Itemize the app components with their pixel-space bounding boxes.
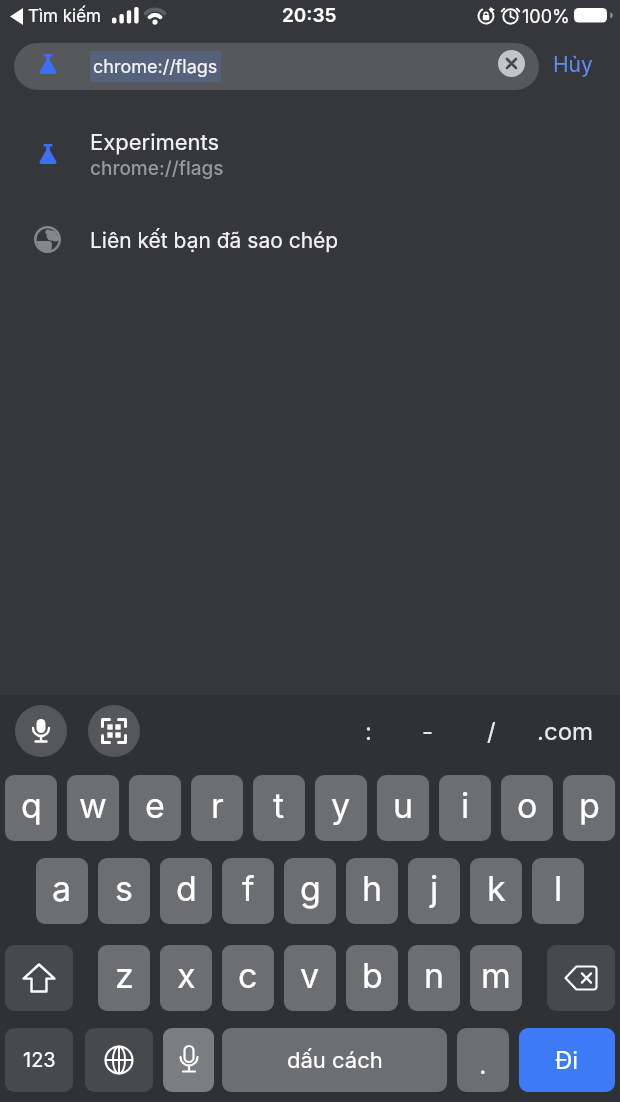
- button[interactable]: j: [408, 858, 460, 924]
- button[interactable]: s: [98, 858, 150, 924]
- button[interactable]: m: [470, 945, 522, 1011]
- staticText: o: [517, 785, 538, 826]
- button[interactable]: a: [36, 858, 88, 924]
- button[interactable]: Experiments: [0, 118, 620, 192]
- staticText: y: [331, 785, 351, 826]
- staticText: a: [52, 868, 72, 909]
- button[interactable]: u: [377, 775, 429, 841]
- staticText: j: [430, 868, 439, 909]
- staticText: m: [481, 955, 511, 996]
- staticText: x: [177, 955, 196, 996]
- button[interactable]: [498, 50, 525, 77]
- staticText: s: [115, 868, 133, 909]
- staticText: Hủy: [553, 52, 593, 77]
- button[interactable]: i: [439, 775, 491, 841]
- staticText: 20:35: [282, 4, 337, 27]
- button[interactable]: h: [346, 858, 398, 924]
- staticText: u: [393, 785, 414, 826]
- button[interactable]: b: [346, 945, 398, 1011]
- staticText: q: [21, 785, 42, 826]
- button[interactable]: Đi: [519, 1028, 615, 1092]
- staticText: p: [579, 785, 600, 826]
- button[interactable]: c: [222, 945, 274, 1011]
- button[interactable]: dấu cách: [222, 1028, 447, 1092]
- staticText: Experiments: [90, 129, 220, 156]
- button[interactable]: :: [352, 705, 384, 757]
- button[interactable]: g: [284, 858, 336, 924]
- button[interactable]: /: [475, 705, 507, 757]
- staticText: chrome://flags: [93, 56, 218, 78]
- button[interactable]: v: [284, 945, 336, 1011]
- staticText: dấu cách: [287, 1047, 383, 1074]
- button[interactable]: Hủy: [546, 48, 600, 80]
- staticText: chrome://flags: [90, 157, 224, 180]
- staticText: i: [461, 785, 470, 826]
- staticText: /: [487, 717, 496, 746]
- staticText: Liên kết bạn đã sao chép: [90, 228, 339, 253]
- staticText: .com: [537, 717, 594, 746]
- button[interactable]: [88, 705, 140, 757]
- button[interactable]: o: [501, 775, 553, 841]
- staticText: n: [424, 955, 445, 996]
- button[interactable]: .: [457, 1028, 509, 1092]
- button[interactable]: -: [412, 705, 444, 757]
- button[interactable]: r: [191, 775, 243, 841]
- button[interactable]: k: [470, 858, 522, 924]
- button[interactable]: p: [563, 775, 615, 841]
- button[interactable]: w: [67, 775, 119, 841]
- button[interactable]: [85, 1028, 153, 1092]
- staticText: d: [176, 868, 197, 909]
- button[interactable]: t: [253, 775, 305, 841]
- button[interactable]: .com: [528, 705, 602, 757]
- staticText: l: [554, 868, 563, 909]
- staticText: 100%: [522, 6, 570, 28]
- staticText: -: [422, 717, 434, 746]
- staticText: z: [115, 955, 134, 996]
- staticText: c: [238, 955, 258, 996]
- staticText: g: [300, 868, 321, 909]
- button[interactable]: n: [408, 945, 460, 1011]
- staticText: h: [362, 868, 383, 909]
- button[interactable]: [163, 1028, 214, 1092]
- button[interactable]: [547, 945, 615, 1011]
- staticText: t: [273, 785, 285, 826]
- button[interactable]: [5, 945, 73, 1011]
- staticText: f: [242, 868, 255, 909]
- button[interactable]: z: [98, 945, 150, 1011]
- staticText: b: [362, 955, 383, 996]
- button[interactable]: q: [5, 775, 57, 841]
- button[interactable]: l: [532, 858, 584, 924]
- button[interactable]: 123: [5, 1028, 73, 1092]
- button[interactable]: [14, 43, 539, 90]
- button[interactable]: e: [129, 775, 181, 841]
- button[interactable]: x: [160, 945, 212, 1011]
- staticText: Đi: [555, 1046, 579, 1075]
- staticText: e: [145, 785, 165, 826]
- button[interactable]: y: [315, 775, 367, 841]
- button[interactable]: Liên kết bạn đã sao chép: [0, 212, 620, 268]
- staticText: v: [300, 955, 320, 996]
- staticText: w: [79, 785, 107, 826]
- staticText: r: [211, 785, 224, 826]
- staticText: Tìm kiếm: [28, 6, 102, 27]
- staticText: .: [479, 1049, 487, 1080]
- button[interactable]: f: [222, 858, 274, 924]
- button[interactable]: d: [160, 858, 212, 924]
- staticText: :: [365, 717, 372, 746]
- staticText: 123: [23, 1048, 56, 1072]
- staticText: k: [487, 868, 506, 909]
- button[interactable]: [15, 705, 67, 757]
